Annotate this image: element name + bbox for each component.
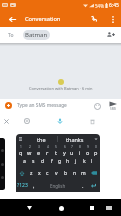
button[interactable]: 2 — [25, 144, 34, 156]
button[interactable]: l — [88, 156, 96, 167]
staticText: . — [82, 182, 84, 189]
staticText: 9 — [87, 145, 89, 149]
button[interactable]: 5 — [52, 144, 60, 156]
button[interactable]: 9 — [84, 144, 92, 156]
staticText: l — [91, 158, 93, 165]
staticText: q — [19, 149, 23, 156]
button[interactable]: z — [27, 167, 35, 179]
button[interactable]: Close — [1, 116, 11, 126]
staticText: Conversation with Batman · 6 min — [29, 86, 93, 91]
button[interactable]: More suggestions — [91, 134, 100, 144]
staticText: 0 — [95, 145, 97, 149]
staticText: SMS — [110, 107, 117, 111]
staticText: English — [50, 183, 66, 189]
button[interactable]: Back — [4, 11, 20, 27]
staticText: b — [64, 170, 68, 177]
button[interactable]: More options — [106, 12, 120, 26]
button[interactable]: Settings — [22, 116, 32, 126]
button[interactable]: Back — [22, 201, 36, 215]
staticText: n — [73, 170, 77, 177]
staticText: y — [63, 149, 66, 156]
staticText: 7 — [71, 145, 73, 149]
button[interactable]: thanks — [58, 134, 91, 144]
staticText: 8 — [79, 145, 81, 149]
button[interactable]: Type an SMS message — [17, 102, 67, 109]
staticText: the — [37, 136, 46, 143]
button[interactable]: One handed mode — [0, 138, 5, 190]
button[interactable]: Add attachment — [2, 99, 15, 112]
button[interactable]: b — [61, 167, 70, 179]
button[interactable]: Batman — [23, 30, 50, 40]
button[interactable]: ?123 — [16, 179, 29, 192]
button[interactable]: h — [64, 156, 72, 167]
staticText: z — [30, 170, 33, 177]
button[interactable]: Call — [87, 12, 101, 26]
staticText: thanks — [66, 136, 84, 143]
button[interactable]: Emoji — [91, 100, 103, 112]
button[interactable]: 7 — [68, 144, 76, 156]
button[interactable]: 4 — [43, 144, 52, 156]
button[interactable]: f — [47, 156, 56, 167]
button[interactable]: a — [20, 156, 29, 167]
button[interactable]: 3 — [34, 144, 43, 156]
button[interactable]: Recents — [85, 201, 99, 215]
button[interactable]: Backspace — [88, 167, 100, 179]
staticText: v — [55, 170, 58, 177]
button[interactable]: v — [52, 167, 61, 179]
staticText: 6 — [64, 145, 66, 149]
button[interactable]: , — [29, 179, 38, 192]
button[interactable]: Delete — [87, 116, 97, 126]
button[interactable]: Space — [38, 179, 78, 192]
button[interactable]: 6 — [60, 144, 68, 156]
staticText: 3 — [38, 145, 40, 149]
button[interactable]: Switch keyboard — [103, 202, 115, 214]
button[interactable]: s — [29, 156, 38, 167]
staticText: g — [58, 158, 62, 165]
staticText: x — [38, 170, 41, 177]
staticText: Batman — [25, 31, 48, 39]
staticText: c — [46, 170, 49, 177]
staticText: 5 — [55, 145, 57, 149]
staticText: m — [81, 170, 86, 177]
staticText: j — [75, 158, 77, 165]
button[interactable]: 8 — [76, 144, 84, 156]
button[interactable]: 1 — [16, 144, 25, 156]
button[interactable]: k — [80, 156, 88, 167]
staticText: t — [55, 149, 57, 156]
button[interactable]: n — [70, 167, 79, 179]
staticText: i — [79, 149, 81, 156]
staticText: p — [94, 149, 98, 156]
staticText: 2 — [29, 145, 31, 149]
button[interactable]: Google — [16, 134, 25, 144]
staticText: s — [32, 158, 35, 165]
button[interactable]: m — [79, 167, 88, 179]
staticText: k — [83, 158, 86, 165]
button[interactable]: j — [72, 156, 80, 167]
staticText: u — [70, 149, 74, 156]
staticText: 4 — [47, 145, 49, 149]
staticText: h — [66, 158, 70, 165]
staticText: e — [37, 149, 41, 156]
button[interactable]: Voice typing — [55, 116, 65, 126]
button[interactable]: 0 — [92, 144, 100, 156]
button[interactable]: c — [43, 167, 52, 179]
button[interactable]: d — [38, 156, 47, 167]
button[interactable]: . — [78, 179, 87, 192]
staticText: 1 — [20, 145, 22, 149]
staticText: , — [33, 182, 35, 189]
staticText: ?123 — [17, 182, 28, 189]
button[interactable]: the — [25, 134, 57, 144]
staticText: a — [23, 158, 26, 165]
staticText: f — [51, 158, 53, 165]
staticText: o — [86, 149, 90, 156]
button[interactable]: Send SMS — [106, 99, 119, 112]
button[interactable]: Enter — [87, 179, 100, 192]
staticText: d — [41, 158, 45, 165]
button[interactable]: g — [56, 156, 64, 167]
button[interactable]: Add person — [104, 28, 118, 42]
staticText: Type an SMS message — [17, 102, 67, 109]
button[interactable]: Shift — [16, 167, 27, 179]
staticText: 54% — [95, 3, 104, 9]
button[interactable]: x — [35, 167, 43, 179]
button[interactable]: Home — [54, 201, 68, 215]
